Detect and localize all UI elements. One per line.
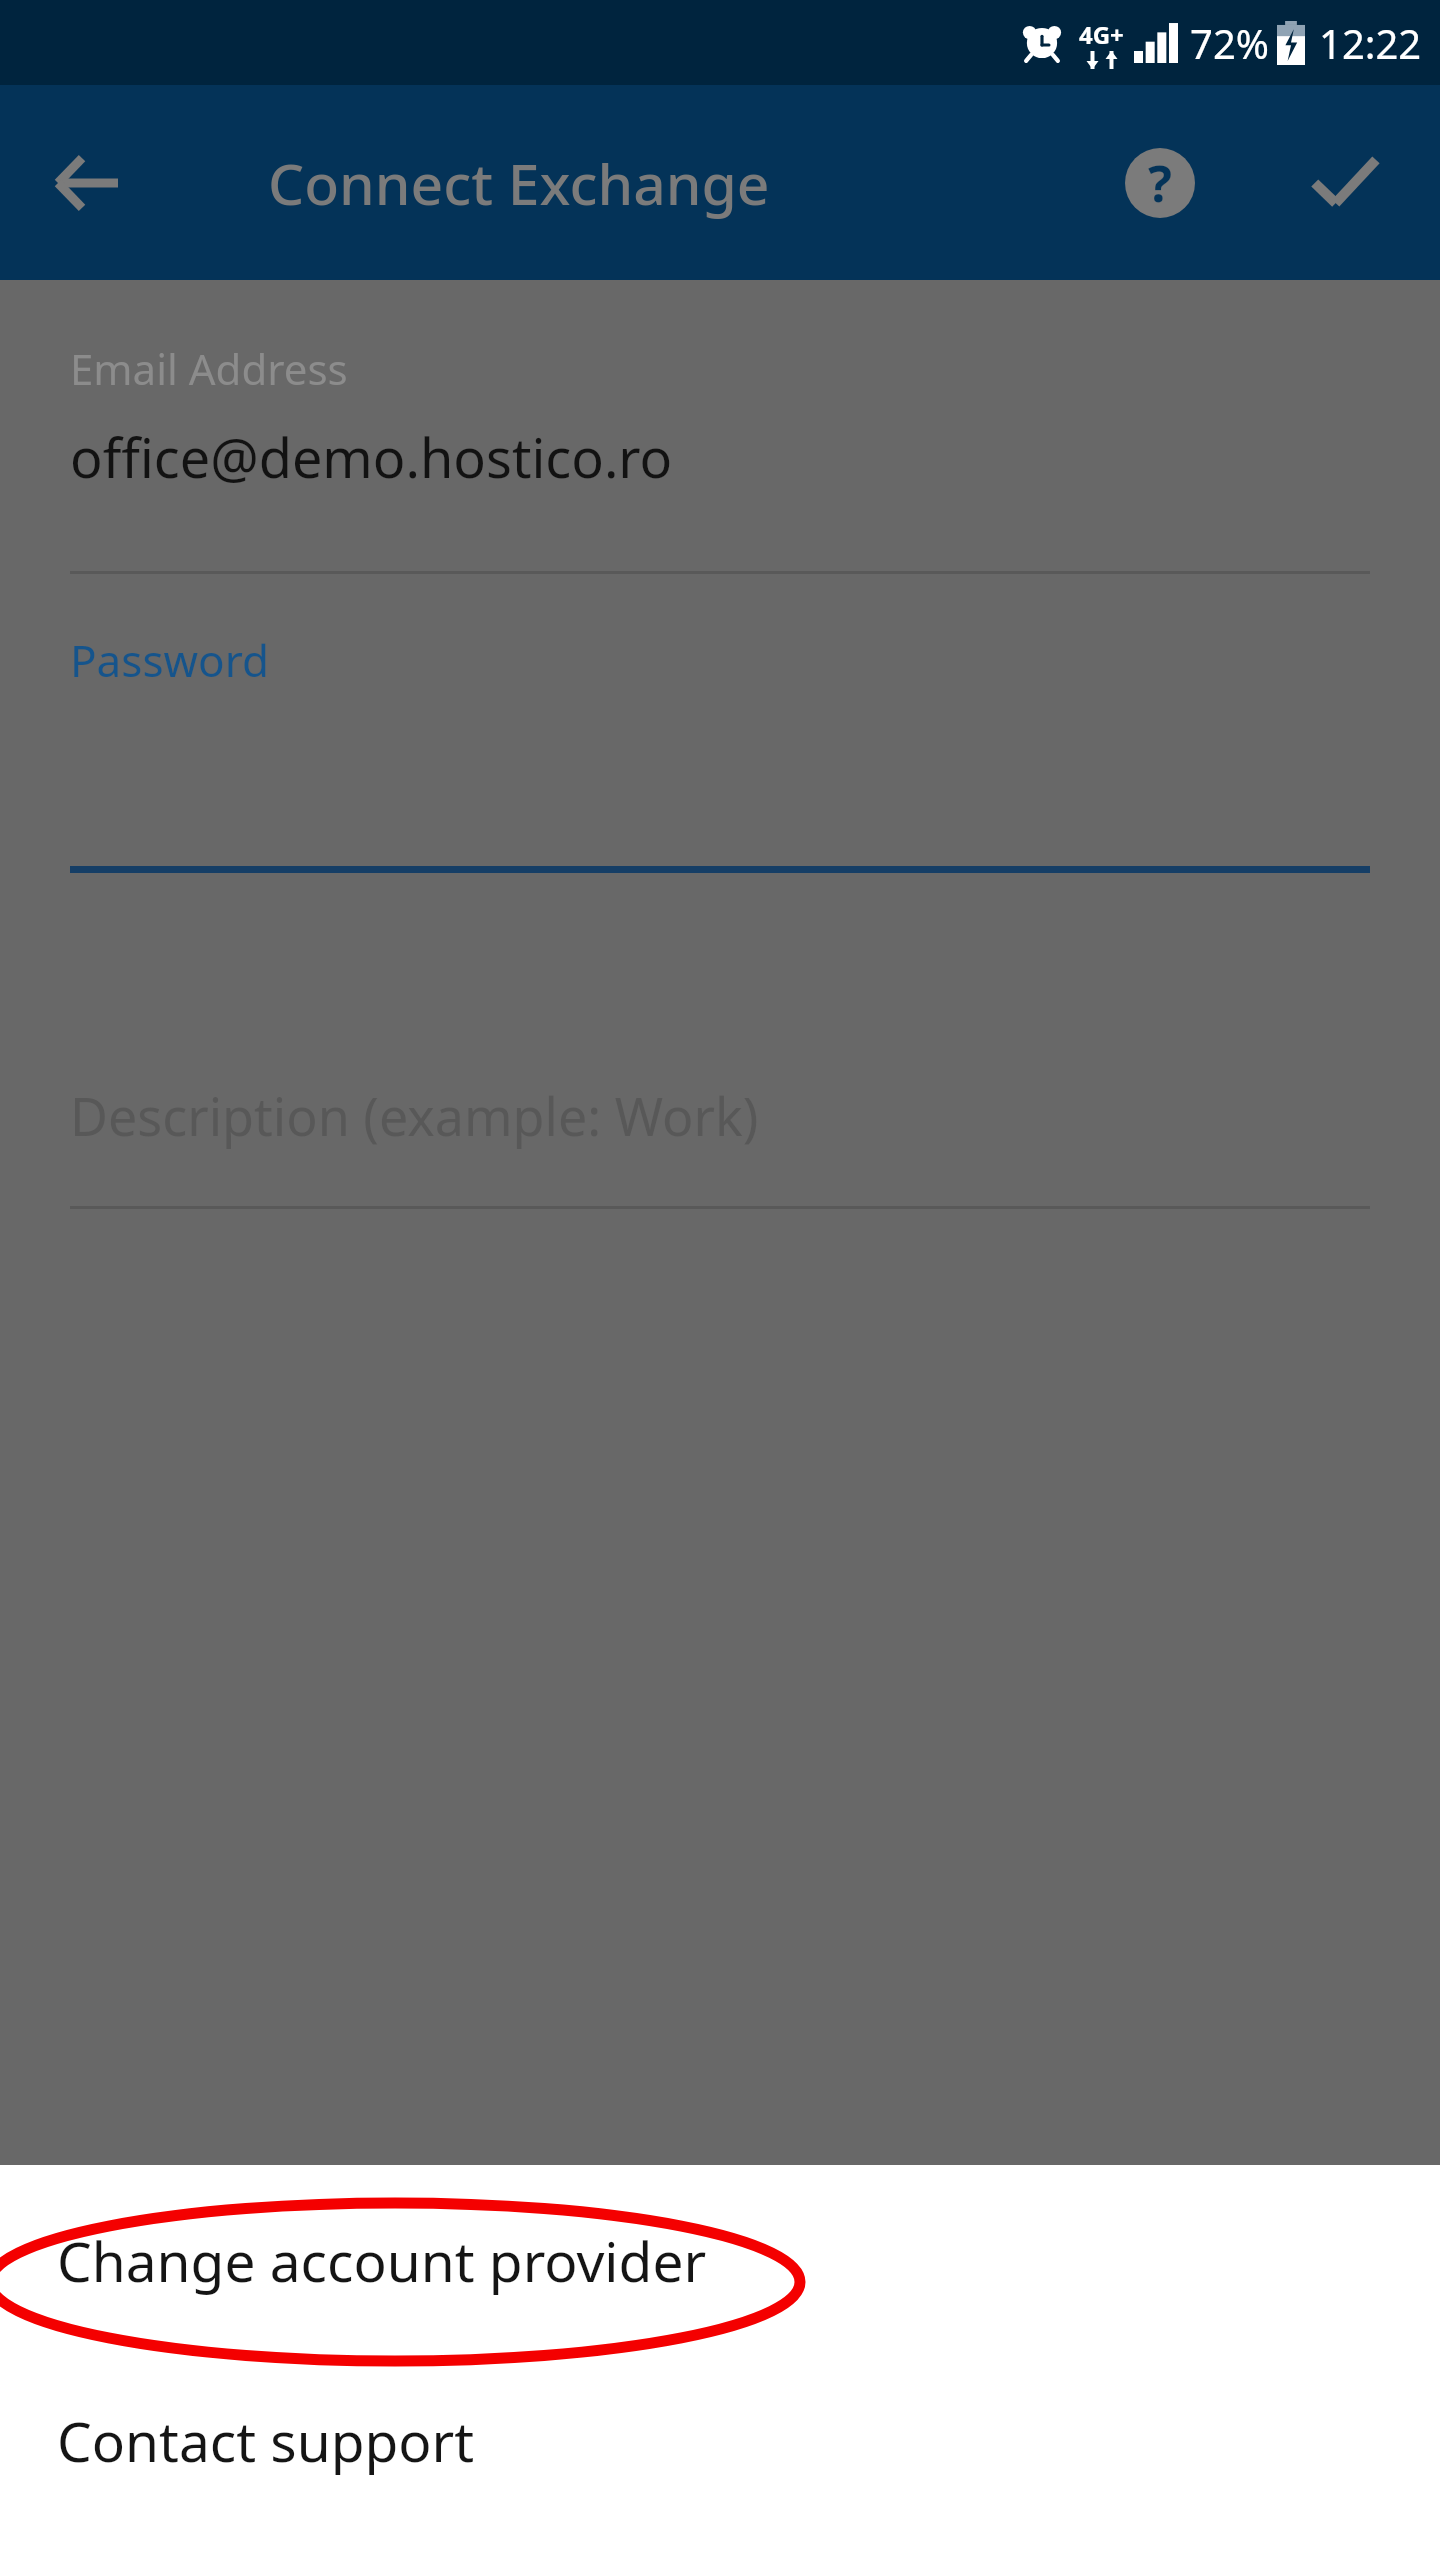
button[interactable]: Help	[1107, 130, 1213, 236]
staticText: Change account provider	[57, 2223, 707, 2298]
button[interactable]: Description (example: Work)	[70, 1080, 759, 1151]
staticText: Contact support	[57, 2403, 475, 2478]
staticText: Connect Exchange	[268, 144, 770, 222]
staticText: 12:22	[1319, 16, 1422, 70]
button[interactable]: Back	[34, 130, 140, 236]
button[interactable]: Done	[1292, 130, 1398, 236]
button[interactable]: office@demo.hostico.ro	[70, 420, 673, 494]
staticText: Password	[70, 630, 270, 690]
staticText: Email Address	[70, 340, 348, 397]
staticText: ?	[1148, 149, 1172, 217]
button[interactable]: Contact support	[0, 2355, 1440, 2525]
button[interactable]: Change account provider	[0, 2165, 1440, 2355]
staticText: 4G+	[1079, 18, 1124, 51]
staticText: 72%	[1190, 16, 1269, 70]
